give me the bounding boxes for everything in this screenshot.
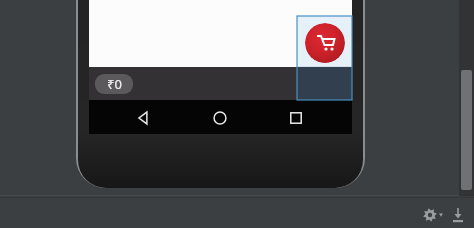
button[interactable]: Recents [287,109,305,127]
button[interactable]: Save screenshot [450,206,466,224]
button[interactable]: ₹0 [95,74,133,94]
button[interactable]: Cart [305,23,345,63]
button[interactable]: Home [211,109,229,127]
button[interactable]: Settings [422,206,444,224]
button[interactable]: Back [135,109,153,127]
staticText: ₹0 [107,75,122,93]
